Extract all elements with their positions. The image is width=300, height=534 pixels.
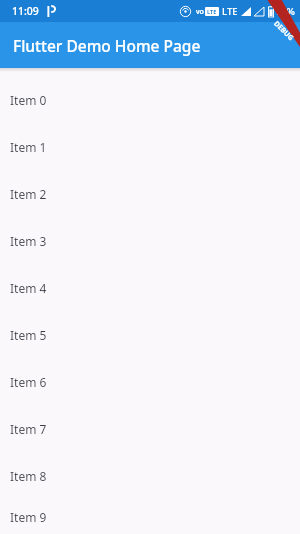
button[interactable]: Item 5 — [0, 311, 300, 358]
staticText: LTE — [222, 5, 238, 18]
button[interactable]: Item 6 — [0, 358, 300, 405]
staticText: Item 8 — [10, 468, 47, 484]
button[interactable]: Item 1 — [0, 123, 300, 170]
staticText: Flutter Demo Home Page — [13, 35, 201, 56]
staticText: Item 3 — [10, 233, 47, 249]
button[interactable]: Item 0 — [0, 76, 300, 123]
button[interactable]: Item 7 — [0, 405, 300, 452]
staticText: Item 1 — [10, 139, 47, 155]
staticText: VO — [196, 8, 204, 15]
staticText: Item 6 — [10, 374, 47, 390]
staticText: 79% — [276, 5, 295, 18]
staticText: Item 9 — [10, 509, 47, 525]
staticText: Item 7 — [10, 421, 47, 437]
staticText: Item 0 — [10, 92, 47, 108]
staticText: Item 2 — [10, 186, 47, 202]
staticText: 11:09 — [12, 4, 39, 18]
button[interactable]: Item 3 — [0, 217, 300, 264]
staticText: DEBUG — [271, 19, 296, 43]
staticText: LTE — [207, 8, 217, 15]
button[interactable]: Item 9 — [0, 499, 300, 534]
button[interactable]: Item 8 — [0, 452, 300, 499]
button[interactable]: Item 2 — [0, 170, 300, 217]
other: Debug banner — [252, 0, 300, 48]
staticText: Item 5 — [10, 327, 47, 343]
button[interactable]: Item 4 — [0, 264, 300, 311]
staticText: Item 4 — [10, 280, 47, 296]
